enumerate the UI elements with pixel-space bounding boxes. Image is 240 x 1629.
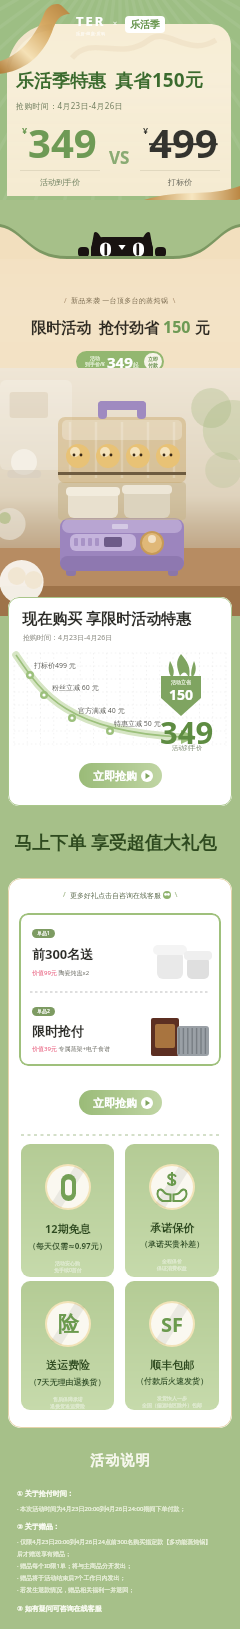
staticText: 活动到手价 (40, 177, 80, 187)
staticText: 150 (169, 685, 194, 704)
staticText: 价值99元 (32, 969, 57, 977)
staticText: 单品1 (37, 930, 50, 937)
staticText: 免手续0首付 (54, 1267, 82, 1274)
button[interactable]: 立即抢购 (79, 1090, 162, 1115)
staticText: 打标价499 元 (34, 661, 76, 671)
staticText: ¥ (143, 124, 149, 136)
staticText: （付款后火速发货） (136, 1376, 208, 1386)
staticText: 承诺保价 (150, 1221, 194, 1235)
staticText: 全国（偏远地区除外）包邮 (142, 1402, 202, 1408)
staticText: 乐厨·健康·质氧 (76, 31, 106, 36)
staticText: × (113, 19, 118, 29)
staticText: 险 (58, 1311, 79, 1337)
button[interactable]: SF (125, 1281, 219, 1410)
staticText: 元 (185, 69, 203, 92)
staticText: VS (109, 146, 130, 169)
staticText: · 仅限4月23日20:00到4月26日24点前300名购买指定款【多功能蒸炖锅… (17, 1538, 212, 1546)
staticText: （承诺买贵补差） (140, 1239, 204, 1249)
staticText: 349 (28, 115, 97, 169)
staticText: 限时活动 抢付劲省 (31, 317, 163, 337)
staticText: 官方满减 40 元 (78, 706, 125, 716)
staticText: 起 (133, 361, 139, 369)
staticText: 12期免息 (45, 1221, 91, 1236)
staticText: / (64, 296, 71, 306)
staticText: \ (171, 890, 178, 900)
staticText: ¥ (22, 124, 28, 136)
staticText: 150 (152, 67, 185, 93)
staticText: （7天无理由退换货） (29, 1376, 106, 1387)
staticText: 乐活季 (130, 18, 160, 31)
staticText: ③ 如有疑问可咨询在线客服 (17, 1604, 102, 1614)
button[interactable]: 12期免息 (21, 1144, 114, 1277)
staticText: · 赠品每个ID限1单；将与主商品分开发出； (17, 1562, 133, 1570)
staticText: 立即 (148, 356, 158, 362)
staticText: 抢购时间：4月23日-4月26日 (23, 633, 113, 643)
staticText: 顺丰包邮 (150, 1358, 194, 1372)
staticText: 活动立省 (171, 679, 191, 685)
staticText: 更多好礼点击自咨询在线客服 (70, 891, 161, 900)
staticText: 特惠立减 50 元 (114, 719, 161, 729)
staticText: 送运费险 (46, 1358, 90, 1372)
staticText: 抢购时间：4月23日-4月26日 (16, 100, 123, 111)
staticText: 活动 (90, 355, 100, 361)
staticText: 专属蒸架+电子食谱 (57, 1045, 110, 1053)
staticText: 499 (149, 115, 218, 169)
staticText: 陶瓷炖盅x2 (57, 969, 90, 977)
staticText: 后才赠送享有赠品； (17, 1550, 71, 1558)
staticText: ② 关于赠品： (17, 1522, 60, 1532)
staticText: 到手价/¥ (85, 361, 105, 368)
staticText: 活动到手价 (172, 744, 202, 752)
staticText: 349 (160, 711, 214, 753)
button[interactable]: 单品1 (19, 913, 221, 992)
staticText: SF (161, 1311, 183, 1338)
staticText: 活动安心购 (55, 1260, 80, 1266)
staticText: 前300名送 (32, 945, 94, 963)
button[interactable]: 活动 (76, 351, 164, 372)
staticText: （每天仅需≈0.97元） (28, 1240, 107, 1251)
staticText: TER (76, 12, 106, 30)
staticText: 马上下单 享受超值大礼包 (14, 830, 217, 855)
staticText: · 本次活动时间为4月23日20:00到4月26日24:00期间下单付款； (17, 1505, 186, 1513)
staticText: 全程保价 (162, 1258, 182, 1264)
staticText: 立即抢购 (93, 1096, 137, 1110)
staticText: 价值39元 (32, 1045, 57, 1053)
button[interactable]: 单品2 (19, 993, 221, 1066)
staticText: 保证消费权益 (157, 1265, 187, 1271)
button[interactable]: 承诺保价 (125, 1144, 219, 1277)
staticText: / (63, 890, 70, 900)
staticText: 活动说明 (90, 1452, 151, 1470)
staticText: 新品来袭 一台顶多台的蒸炖锅 (71, 296, 169, 306)
staticText: 349 (107, 352, 133, 372)
staticText: 元 (191, 317, 210, 337)
staticText: ① 关于抢付时间： (17, 1489, 74, 1499)
button[interactable]: 立即抢购 (79, 763, 162, 788)
staticText: · 赠品将于活动结束后7个工作日内发出； (17, 1574, 126, 1582)
staticText: 乐活季特惠 真省 (16, 68, 152, 93)
staticText: 付款 (148, 362, 158, 368)
staticText: 打标价 (168, 177, 192, 187)
staticText: 退换货送运费险 (50, 1403, 85, 1409)
staticText: 售后保障承诺 (53, 1396, 83, 1402)
staticText: · 若发生退款情况，赠品相关福利一并退回； (17, 1586, 135, 1594)
staticText: 粉丝立减 60 元 (52, 683, 99, 693)
staticText: 150 (163, 316, 191, 338)
staticText: 发货快人一步 (157, 1395, 187, 1401)
staticText: 现在购买 享限时活动特惠 (22, 608, 191, 628)
staticText: \ (169, 296, 176, 306)
button[interactable]: 险 (21, 1281, 114, 1410)
staticText: 限时抢付 (32, 1023, 84, 1039)
staticText: 单品2 (37, 1008, 50, 1015)
staticText: 立即抢购 (93, 769, 137, 783)
